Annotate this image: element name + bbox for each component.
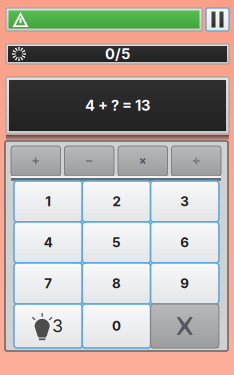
staticText: 5: [112, 234, 121, 250]
staticText: 4 + ? = 13: [85, 97, 150, 114]
staticText: 2: [112, 193, 120, 209]
staticText: 3: [180, 193, 189, 209]
button[interactable]: 3: [151, 181, 219, 222]
staticText: 0: [112, 318, 121, 334]
staticText: 9: [180, 275, 189, 291]
staticText: 3: [52, 315, 63, 336]
staticText: 6: [180, 234, 189, 250]
button[interactable]: 4: [14, 222, 82, 263]
button[interactable]: Delete: [151, 304, 219, 348]
staticText: 4: [44, 234, 53, 250]
button[interactable]: Divide: [171, 146, 221, 176]
button[interactable]: Pause: [206, 8, 229, 31]
staticText: 7: [44, 275, 52, 291]
button[interactable]: 5: [82, 222, 151, 263]
button[interactable]: Plus: [11, 146, 60, 176]
button[interactable]: 8: [82, 263, 151, 304]
button[interactable]: 9: [151, 263, 219, 304]
staticText: 1: [45, 193, 51, 209]
button[interactable]: 7: [14, 263, 82, 304]
button[interactable]: 2: [82, 181, 151, 222]
button[interactable]: Hint: [14, 304, 82, 348]
button[interactable]: 1: [14, 181, 82, 222]
button[interactable]: 6: [151, 222, 219, 263]
button[interactable]: 0: [82, 304, 151, 348]
staticText: 0/5: [105, 45, 130, 63]
button[interactable]: Minus: [64, 146, 114, 176]
staticText: 8: [112, 275, 121, 291]
button[interactable]: Multiply: [118, 146, 167, 176]
